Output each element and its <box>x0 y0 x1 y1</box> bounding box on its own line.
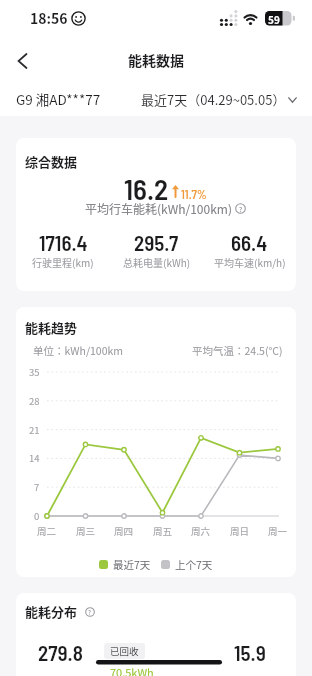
button[interactable]: 最近7天（04.29~05.05） <box>141 90 297 109</box>
staticText: 59 <box>268 12 280 26</box>
staticText: 上个7天 <box>175 557 213 572</box>
staticText: 能耗数据 <box>128 50 184 70</box>
staticText: 行驶里程(km) <box>32 255 94 269</box>
staticText: G9 湘AD***77 <box>16 89 101 109</box>
staticText: 周三 <box>76 524 96 538</box>
button[interactable]: G9 湘AD***77 <box>16 89 101 109</box>
staticText: 周五 <box>153 524 173 538</box>
staticText: 已回收 <box>110 644 139 658</box>
staticText: ? <box>88 608 92 617</box>
staticText: 周六 <box>191 524 211 538</box>
staticText: 35 <box>29 365 40 379</box>
staticText: 279.8 <box>38 640 83 665</box>
staticText: 周二 <box>37 524 57 538</box>
staticText: 70.5kWh <box>110 664 154 676</box>
staticText: 14 <box>29 451 40 465</box>
staticText: 1716.4 <box>39 230 88 255</box>
staticText: 平均气温：24.5(°C) <box>192 343 283 358</box>
staticText: 平均车速(km/h) <box>214 255 286 269</box>
staticText: 周一 <box>268 524 288 538</box>
staticText: 18:56 <box>30 8 68 28</box>
staticText: 综合数据 <box>25 152 78 171</box>
staticText: 总耗电量(kWh) <box>123 255 191 269</box>
button[interactable] <box>8 47 36 75</box>
staticText: 0 <box>34 509 40 523</box>
staticText: 单位：kWh/100km <box>33 343 124 358</box>
staticText: 295.7 <box>134 230 179 255</box>
staticText: 周日 <box>230 524 250 538</box>
staticText: 11.7% <box>181 186 207 201</box>
staticText: ? <box>239 204 243 214</box>
staticText: 28 <box>29 394 40 408</box>
staticText: 7 <box>34 480 40 494</box>
staticText: 最近7天 <box>113 557 151 572</box>
staticText: 能耗分布 <box>25 602 78 621</box>
staticText: 平均行车能耗(kWh/100km) <box>85 200 232 217</box>
staticText: 15.9 <box>234 640 266 665</box>
staticText: 最近7天（04.29~05.05） <box>141 90 286 109</box>
staticText: 周四 <box>114 524 134 538</box>
staticText: 66.4 <box>231 230 268 255</box>
staticText: 能耗趋势 <box>25 318 78 337</box>
staticText: 16.2 <box>124 171 169 206</box>
staticText: 21 <box>29 423 40 437</box>
